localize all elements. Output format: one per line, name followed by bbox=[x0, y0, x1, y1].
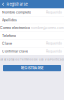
staticText: Apellidos bbox=[2, 18, 17, 22]
staticText: nombre@correo.com bbox=[31, 26, 64, 30]
staticText: Requerido bbox=[46, 49, 62, 53]
staticText: Requerido bbox=[46, 41, 62, 45]
staticText: Confirmar clave bbox=[2, 49, 28, 53]
button[interactable]: Telefono bbox=[0, 32, 64, 39]
staticText: Clave bbox=[2, 41, 12, 46]
button[interactable]: Clave bbox=[0, 40, 64, 47]
button[interactable]: Confirmar clave bbox=[0, 47, 64, 55]
button[interactable]: Nombre completo bbox=[0, 8, 64, 16]
button[interactable]: REGISTRARSE bbox=[3, 65, 61, 71]
button[interactable]: Apellidos bbox=[0, 16, 64, 24]
button[interactable]: Back bbox=[0, 0, 6, 8]
staticText: REGISTRARSE bbox=[20, 66, 43, 70]
staticText: Registrarse bbox=[6, 2, 27, 7]
staticText: Telefono bbox=[2, 34, 16, 38]
staticText: Nombre completo bbox=[2, 10, 31, 14]
staticText: Al continuar aceptas los Terminos de uso… bbox=[0, 58, 64, 61]
button[interactable]: Correo electronico bbox=[0, 24, 64, 32]
staticText: Requerido bbox=[46, 10, 62, 14]
staticText: Correo electronico bbox=[0, 26, 30, 30]
